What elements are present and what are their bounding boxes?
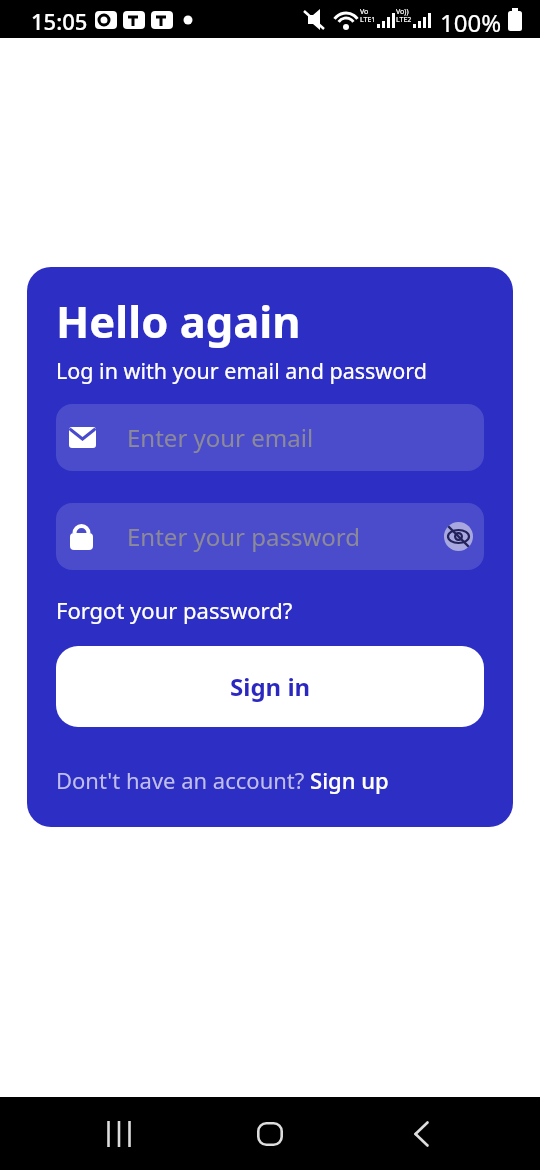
- button[interactable]: Enter your email: [56, 404, 484, 471]
- staticText: 15:05: [31, 6, 88, 36]
- button[interactable]: Dont't have an account? Sign up: [56, 765, 389, 795]
- staticText: Sign in: [230, 670, 311, 703]
- button[interactable]: [247, 1097, 293, 1170]
- staticText: Enter your password: [127, 520, 361, 553]
- button[interactable]: [96, 1097, 142, 1170]
- staticText: Vo LTE1: [360, 7, 376, 24]
- button[interactable]: Enter your password: [56, 503, 484, 570]
- button[interactable]: Sign in: [56, 646, 484, 727]
- button[interactable]: Forgot your password?: [56, 595, 293, 625]
- staticText: Vo)) LTE2: [396, 7, 412, 24]
- staticText: Hello again: [56, 291, 301, 350]
- staticText: Log in with your email and password: [56, 356, 427, 385]
- staticText: Enter your email: [127, 421, 314, 454]
- button[interactable]: [444, 522, 473, 551]
- staticText: 100%: [440, 6, 502, 39]
- button[interactable]: [398, 1097, 444, 1170]
